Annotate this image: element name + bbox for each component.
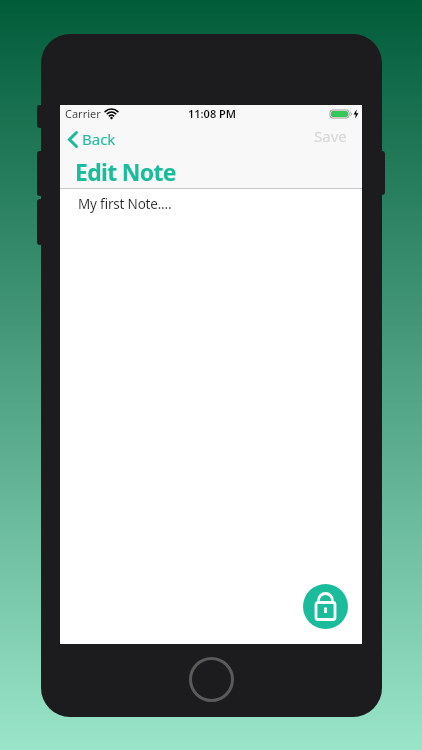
staticText: Back <box>82 129 116 149</box>
staticText: My first Note.... <box>78 195 172 213</box>
button[interactable] <box>303 584 348 629</box>
button[interactable]: Save <box>314 126 347 146</box>
button[interactable]: Back <box>68 129 116 149</box>
staticText: Carrier <box>65 106 101 121</box>
staticText: 11:08 PM <box>188 106 237 121</box>
staticText: Edit Note <box>75 156 176 187</box>
